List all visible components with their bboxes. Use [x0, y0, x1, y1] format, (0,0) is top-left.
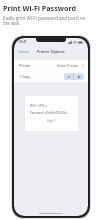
staticText: Cancel	[18, 49, 29, 54]
button[interactable]: Increase copies	[74, 73, 84, 80]
button[interactable]: 1 Copy	[14, 71, 88, 82]
staticText: Page 1	[47, 119, 56, 123]
staticText: Printer	[19, 63, 31, 68]
button[interactable]: Printer	[14, 60, 88, 71]
staticText: Select Printer	[57, 63, 79, 68]
staticText: 09:41	[19, 40, 27, 44]
button[interactable]: Decrease copies	[64, 73, 73, 80]
staticText: Printer Options	[37, 49, 65, 54]
staticText: Wi-Fi: UPSLa	[30, 104, 47, 108]
staticText: Password: s8chYeh756L3Lo	[30, 111, 68, 115]
button[interactable]: Cancel	[14, 48, 31, 55]
staticText: 1 Copy	[19, 74, 31, 79]
staticText: Print Wi-Fi Password	[3, 3, 77, 13]
staticText: Easily print Wi-Fi password and put it o…	[3, 15, 86, 27]
